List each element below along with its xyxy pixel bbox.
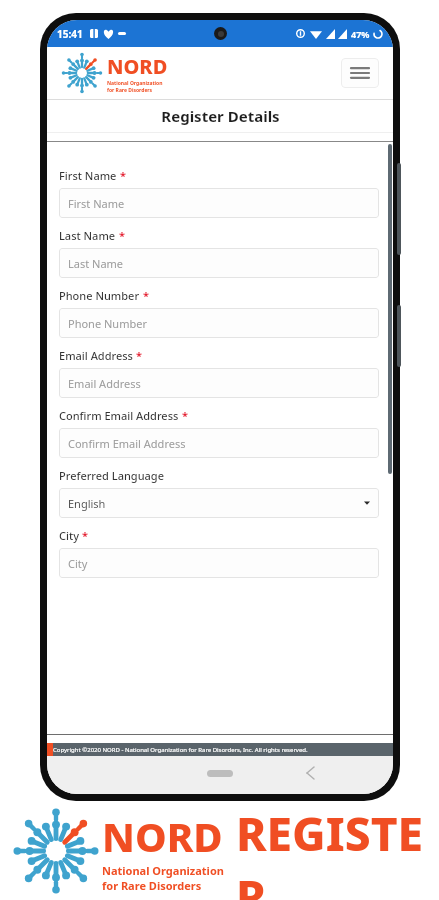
button[interactable]: English <box>59 488 379 518</box>
staticText: Phone Number <box>59 288 140 303</box>
staticText: * <box>120 168 126 183</box>
staticText: 47% <box>351 28 370 40</box>
staticText: * <box>136 348 142 363</box>
staticText: Last Name <box>59 228 116 243</box>
staticText: * <box>182 408 188 423</box>
button[interactable]: Back <box>299 762 321 784</box>
staticText: 15:41 <box>57 27 83 41</box>
staticText: First Name <box>59 168 117 183</box>
staticText: National Organization <box>102 863 224 878</box>
button[interactable]: Open menu <box>341 58 379 88</box>
staticText: Confirm Email Address <box>59 408 179 423</box>
staticText: First Name <box>68 196 125 211</box>
staticText: REGISTER <box>236 802 439 900</box>
staticText: * <box>82 528 88 543</box>
staticText: National Organization <box>107 80 163 87</box>
button[interactable]: Home <box>207 770 233 777</box>
staticText: NORD <box>107 53 168 80</box>
staticText: for Rare Disorders <box>107 87 153 94</box>
staticText: * <box>143 288 149 303</box>
button[interactable]: First Name <box>59 188 379 218</box>
button[interactable]: Last Name <box>59 248 379 278</box>
staticText: City <box>68 556 88 571</box>
staticText: NORD <box>102 809 223 863</box>
button[interactable]: Phone Number <box>59 308 379 338</box>
staticText: City <box>59 528 79 543</box>
staticText: * <box>119 228 125 243</box>
button[interactable]: Confirm Email Address <box>59 428 379 458</box>
staticText: Copyright ©2020 NORD - National Organiza… <box>53 746 308 754</box>
staticText: Register Details <box>161 106 280 126</box>
staticText: Last Name <box>68 256 124 271</box>
staticText: Email Address <box>68 376 141 391</box>
staticText: English <box>68 496 106 511</box>
button[interactable]: City <box>59 548 379 578</box>
staticText: Preferred Language <box>59 468 164 483</box>
staticText: Phone Number <box>68 316 147 331</box>
staticText: Email Address <box>59 348 133 363</box>
button[interactable]: Email Address <box>59 368 379 398</box>
staticText: for Rare Disorders <box>102 878 202 893</box>
staticText: Confirm Email Address <box>68 436 186 451</box>
